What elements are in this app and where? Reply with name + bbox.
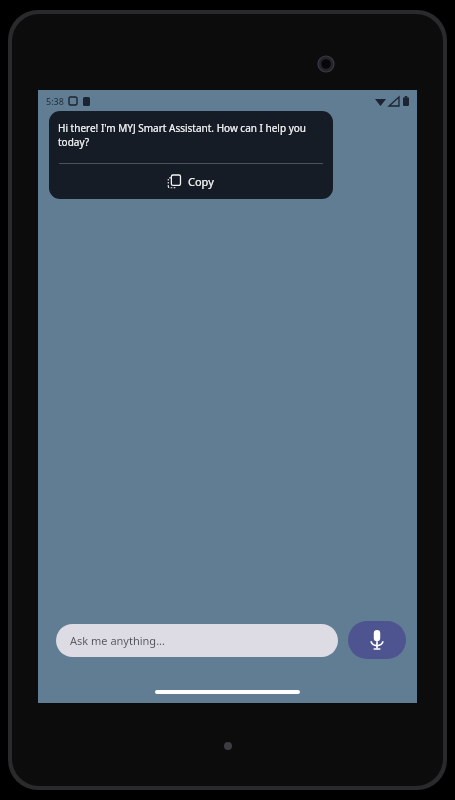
- staticText: Ask me anything...: [70, 633, 165, 648]
- button[interactable]: Voice input: [348, 621, 406, 659]
- button[interactable]: Copy: [49, 164, 333, 199]
- staticText: Hi there! I'm MYJ Smart Assistant. How c…: [58, 121, 324, 149]
- staticText: Copy: [188, 174, 214, 189]
- button[interactable]: Ask me anything...: [56, 624, 338, 657]
- staticText: 5:38: [46, 95, 64, 107]
